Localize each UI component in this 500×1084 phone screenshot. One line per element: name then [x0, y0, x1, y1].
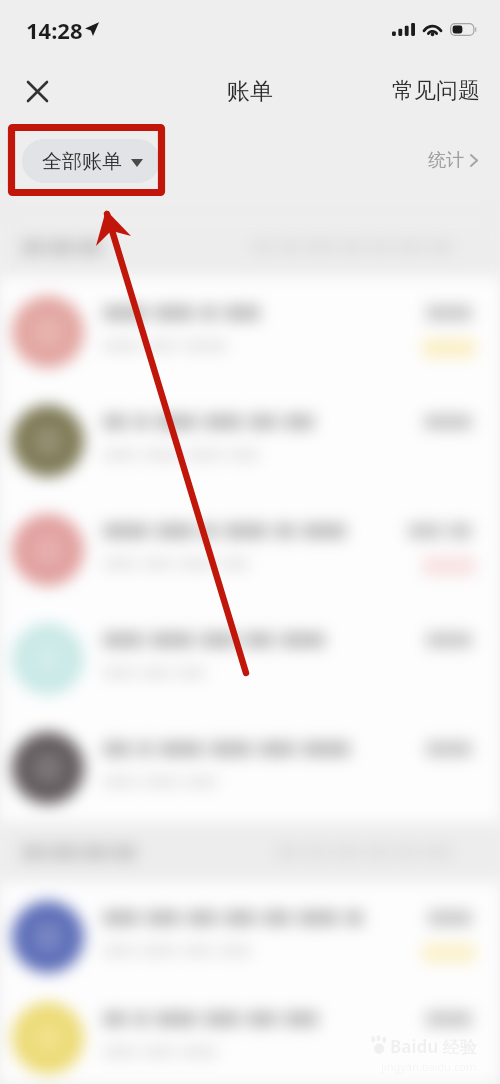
- button[interactable]: 常见问题: [384, 67, 488, 115]
- button[interactable]: [0, 277, 500, 386]
- staticText: Baidu 经验: [390, 1035, 477, 1058]
- button[interactable]: [0, 713, 500, 822]
- button[interactable]: [0, 882, 500, 991]
- button[interactable]: [0, 386, 500, 495]
- staticText: 账单: [227, 77, 273, 106]
- button[interactable]: 全部账单: [22, 139, 160, 183]
- button[interactable]: [0, 495, 500, 604]
- staticText: 常见问题: [392, 77, 480, 105]
- button[interactable]: 统计: [424, 141, 482, 180]
- staticText: 全部账单: [42, 149, 122, 174]
- staticText: 统计: [428, 149, 464, 172]
- button[interactable]: [0, 604, 500, 713]
- button[interactable]: 账单: [221, 71, 279, 112]
- staticText: 14:28: [26, 15, 83, 45]
- button[interactable]: Close: [13, 67, 61, 115]
- button[interactable]: [0, 991, 500, 1084]
